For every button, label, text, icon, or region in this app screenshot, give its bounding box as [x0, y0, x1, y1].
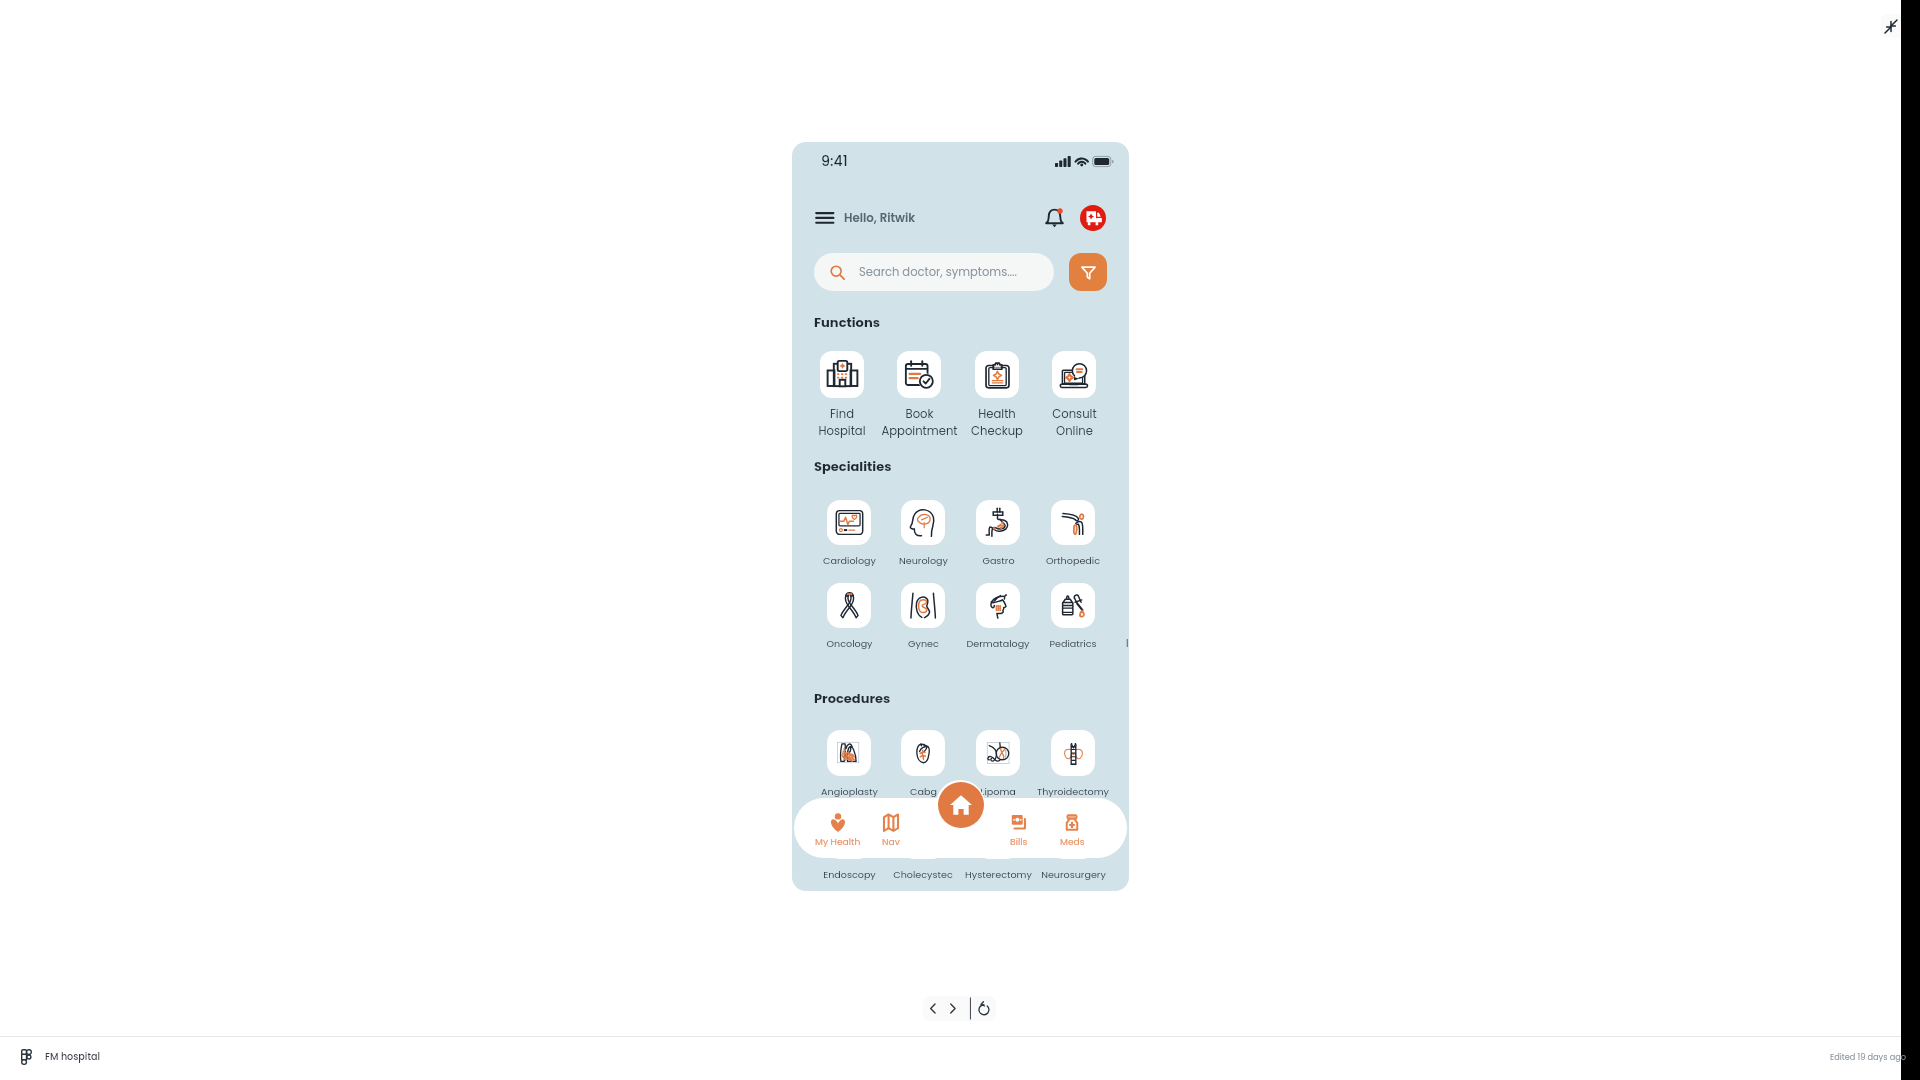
staticText: Meds: [1060, 835, 1085, 848]
staticText: Neurosurgery: [1041, 868, 1106, 881]
staticText: Lipoma: [980, 785, 1016, 798]
staticText: Dermatalogy: [966, 637, 1030, 650]
staticText: Nav: [882, 835, 900, 848]
staticText: Search doctor, symptoms....: [859, 264, 1017, 280]
button[interactable]: Home: [938, 782, 984, 828]
button[interactable]: Meds: [1046, 808, 1098, 852]
staticText: Hysterectomy: [965, 868, 1032, 881]
staticText: Cabg: [910, 785, 937, 798]
staticText: Orthopedic: [1046, 554, 1100, 567]
button[interactable]: [901, 730, 945, 776]
button[interactable]: Notifications: [1045, 208, 1064, 228]
staticText: Specialities: [814, 457, 892, 475]
button[interactable]: [1052, 351, 1096, 398]
button[interactable]: [820, 351, 864, 398]
button[interactable]: [827, 500, 871, 545]
button[interactable]: [976, 583, 1020, 628]
staticText: Oncology: [826, 637, 873, 650]
staticText: Hello, Ritwik: [844, 210, 916, 227]
button[interactable]: My Health: [812, 808, 864, 852]
button[interactable]: [1051, 813, 1095, 859]
button[interactable]: [1051, 730, 1095, 776]
button[interactable]: [901, 500, 945, 545]
button[interactable]: [901, 583, 945, 628]
staticText: Cholecystec: [893, 868, 953, 881]
staticText: Pediatrics: [1049, 637, 1097, 650]
button[interactable]: Menu: [813, 206, 835, 228]
staticText: Consult Online: [1052, 406, 1097, 439]
staticText: Procedures: [814, 689, 891, 707]
button[interactable]: [827, 583, 871, 628]
button[interactable]: [827, 813, 871, 859]
button[interactable]: [976, 500, 1020, 545]
button[interactable]: [1051, 583, 1095, 628]
staticText: Edited 19 days ago: [1830, 1051, 1906, 1062]
button[interactable]: [827, 730, 871, 776]
staticText: Gastro: [982, 554, 1015, 567]
staticText: Endoscopy: [823, 868, 876, 881]
button[interactable]: [1051, 500, 1095, 545]
staticText: Neurology: [899, 554, 948, 567]
staticText: Find Hospital: [818, 406, 866, 439]
staticText: My Health: [815, 835, 861, 848]
button[interactable]: [897, 351, 941, 398]
staticText: Gynec: [908, 637, 939, 650]
staticText: I: [1126, 636, 1129, 650]
staticText: Health Checkup: [971, 406, 1023, 439]
button[interactable]: Nav: [865, 808, 917, 852]
button[interactable]: Bills: [993, 808, 1045, 852]
staticText: Book Appointment: [881, 406, 958, 439]
staticText: Functions: [814, 313, 880, 331]
staticText: 9:41: [821, 151, 848, 171]
staticText: FM hospital: [45, 1050, 101, 1063]
staticText: Thyroidectomy: [1037, 785, 1109, 798]
button[interactable]: [976, 813, 1020, 859]
button[interactable]: [976, 730, 1020, 776]
staticText: Cardiology: [823, 554, 876, 567]
button[interactable]: Emergency ambulance: [1080, 205, 1106, 231]
button[interactable]: Search doctor, symptoms....: [814, 253, 1054, 291]
button[interactable]: [901, 813, 945, 859]
staticText: Bills: [1010, 835, 1028, 848]
button[interactable]: Collapse: [1881, 14, 1907, 38]
staticText: Angioplasty: [821, 785, 878, 798]
button[interactable]: Filter: [1069, 253, 1107, 291]
button[interactable]: [975, 351, 1019, 398]
